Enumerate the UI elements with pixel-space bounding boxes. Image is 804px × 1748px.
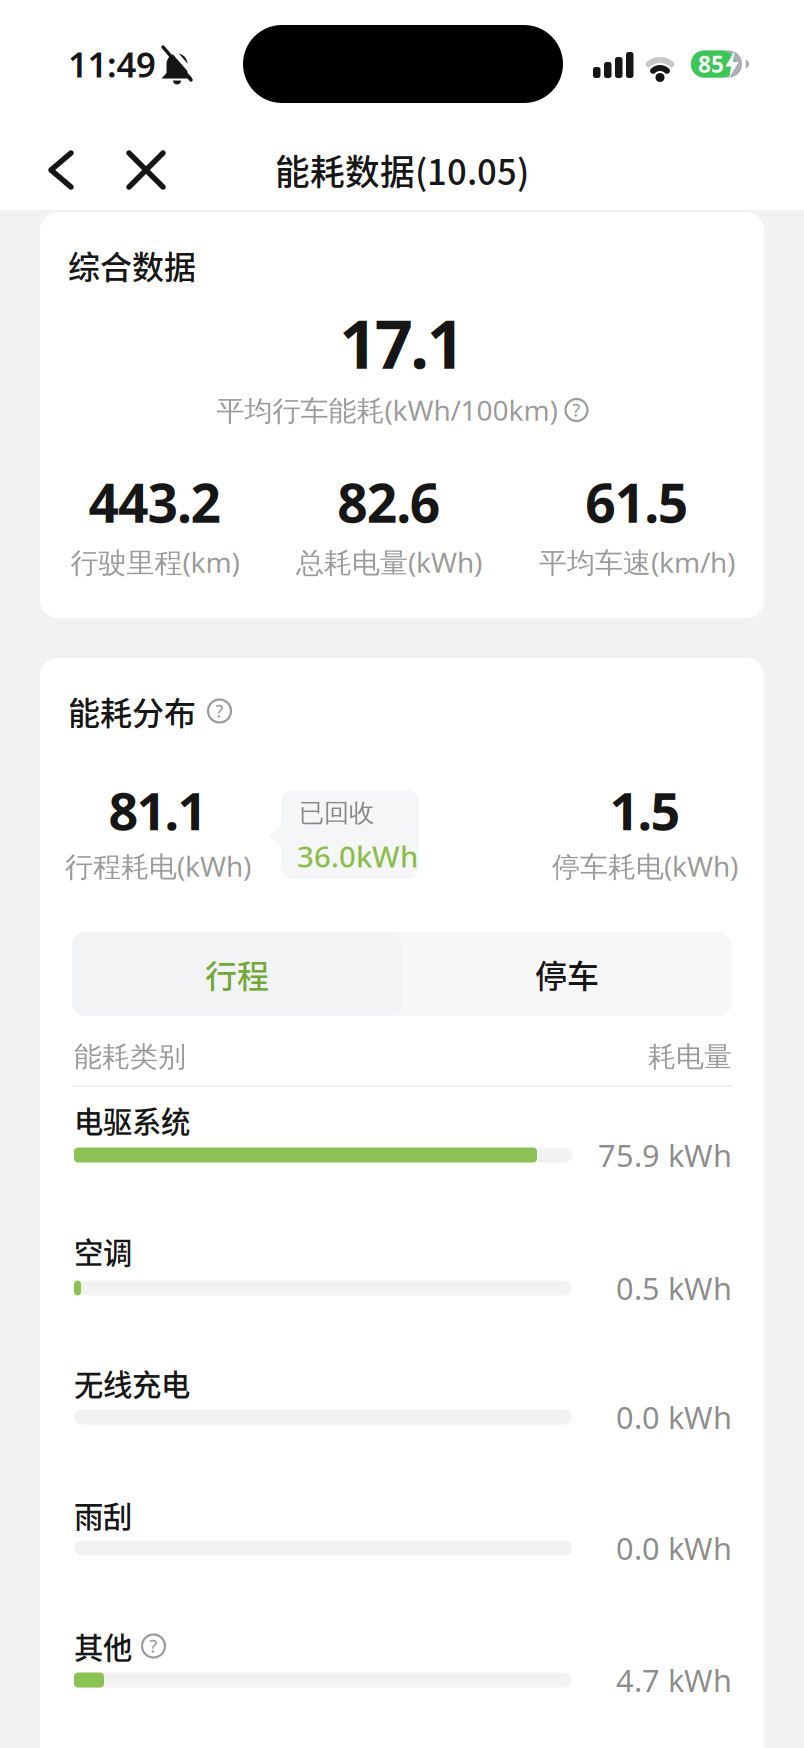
staticText: 61.5: [585, 467, 689, 537]
staticText: 能耗数据(10.05): [275, 145, 529, 195]
button[interactable]: 停车: [402, 932, 732, 1016]
staticText: 行程耗电(kWh): [65, 847, 251, 885]
staticText: 其他: [74, 1625, 132, 1667]
button[interactable]: 其他说明: [142, 1634, 165, 1657]
staticText: 0.0 kWh: [616, 1528, 732, 1568]
staticText: 0.5 kWh: [616, 1268, 732, 1308]
staticText: 停车: [535, 951, 599, 997]
staticText: 82.6: [337, 467, 441, 537]
staticText: 总耗电量(kWh): [296, 543, 482, 581]
button[interactable]: Close: [126, 150, 166, 190]
staticText: ?: [149, 1634, 157, 1657]
staticText: ?: [572, 398, 580, 421]
staticText: 443.2: [88, 467, 221, 537]
staticText: 11:49: [68, 41, 156, 87]
button[interactable]: 行程: [72, 932, 402, 1016]
staticText: 平均行车能耗(kWh/100km): [216, 391, 557, 429]
staticText: 综合数据: [68, 242, 196, 288]
staticText: 0.0 kWh: [616, 1397, 732, 1437]
staticText: 17.1: [339, 299, 465, 387]
staticText: 平均车速(km/h): [539, 543, 735, 581]
button[interactable]: Back: [47, 150, 87, 190]
staticText: ?: [215, 699, 223, 722]
staticText: 1.5: [609, 775, 680, 845]
button[interactable]: 能耗分布说明: [208, 699, 231, 722]
staticText: 电驱系统: [74, 1099, 190, 1141]
staticText: 停车耗电(kWh): [552, 847, 738, 885]
staticText: 能耗类别: [74, 1040, 186, 1074]
staticText: 空调: [74, 1230, 132, 1272]
staticText: 已回收: [299, 797, 374, 828]
staticText: 无线充电: [74, 1362, 190, 1404]
staticText: 75.9 kWh: [598, 1135, 732, 1175]
staticText: 行驶里程(km): [70, 543, 239, 581]
staticText: 能耗分布: [68, 688, 196, 734]
staticText: 81.1: [108, 775, 207, 845]
staticText: 36.0kWh: [297, 836, 418, 875]
staticText: 4.7 kWh: [616, 1660, 732, 1700]
button[interactable]: 平均行车能耗说明: [216, 391, 587, 429]
staticText: 雨刮: [74, 1494, 132, 1536]
staticText: 85: [698, 49, 724, 79]
staticText: 行程: [205, 951, 269, 997]
staticText: 耗电量: [648, 1040, 732, 1074]
